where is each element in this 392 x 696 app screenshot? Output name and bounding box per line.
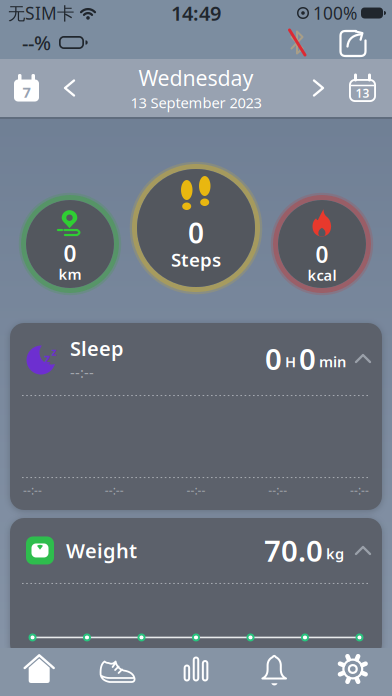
- staticText: Sleep: [70, 335, 124, 362]
- staticText: 0: [299, 339, 316, 378]
- staticText: --:--: [105, 482, 124, 498]
- button[interactable]: Calendar: [348, 73, 377, 102]
- button[interactable]: Previous day: [65, 80, 74, 95]
- staticText: min: [319, 352, 346, 371]
- staticText: 100%: [313, 1, 357, 24]
- staticText: --:--: [350, 482, 369, 498]
- staticText: 0: [63, 238, 76, 268]
- button[interactable]: Wednesday: [130, 64, 261, 112]
- button[interactable]: Distance 0 km: [20, 194, 120, 294]
- staticText: z: [44, 350, 51, 367]
- button[interactable]: Next day: [314, 80, 323, 95]
- button[interactable]: Share: [336, 26, 368, 58]
- staticText: 13 September 2023: [130, 93, 261, 112]
- button[interactable]: Home: [0, 654, 78, 683]
- staticText: Wednesday: [138, 64, 253, 92]
- staticText: km: [58, 264, 81, 284]
- button[interactable]: Weight 70.0 kg: [10, 518, 382, 658]
- staticText: 7: [22, 82, 30, 102]
- staticText: --:--: [268, 482, 287, 498]
- staticText: Weight: [66, 537, 137, 564]
- staticText: 0: [188, 214, 204, 251]
- staticText: kcal: [307, 265, 336, 285]
- button[interactable]: Statistics: [157, 656, 235, 682]
- button[interactable]: Exercise: [78, 654, 157, 683]
- staticText: 0: [265, 339, 282, 378]
- staticText: Steps: [171, 247, 221, 272]
- button[interactable]: Notifications: [235, 654, 314, 684]
- button[interactable]: Week view: [13, 73, 40, 102]
- staticText: kg: [326, 544, 344, 563]
- button[interactable]: Settings: [314, 655, 392, 683]
- button[interactable]: Sleep 0 h 0 min: [10, 323, 382, 510]
- staticText: 无SIM卡: [8, 1, 74, 24]
- staticText: z: [51, 344, 56, 359]
- staticText: H: [285, 352, 296, 371]
- staticText: --:--: [70, 363, 94, 382]
- staticText: 14:49: [171, 0, 221, 26]
- staticText: --:--: [23, 482, 42, 498]
- staticText: 70.0: [264, 531, 323, 570]
- staticText: 13: [355, 85, 369, 101]
- staticText: 0: [315, 239, 328, 269]
- button[interactable]: Calories 0 kcal: [272, 194, 372, 294]
- button[interactable]: 0 Steps: [131, 163, 261, 293]
- staticText: --:--: [186, 482, 205, 498]
- staticText: --%: [22, 29, 51, 56]
- button[interactable]: Bluetooth disconnected: [287, 29, 307, 55]
